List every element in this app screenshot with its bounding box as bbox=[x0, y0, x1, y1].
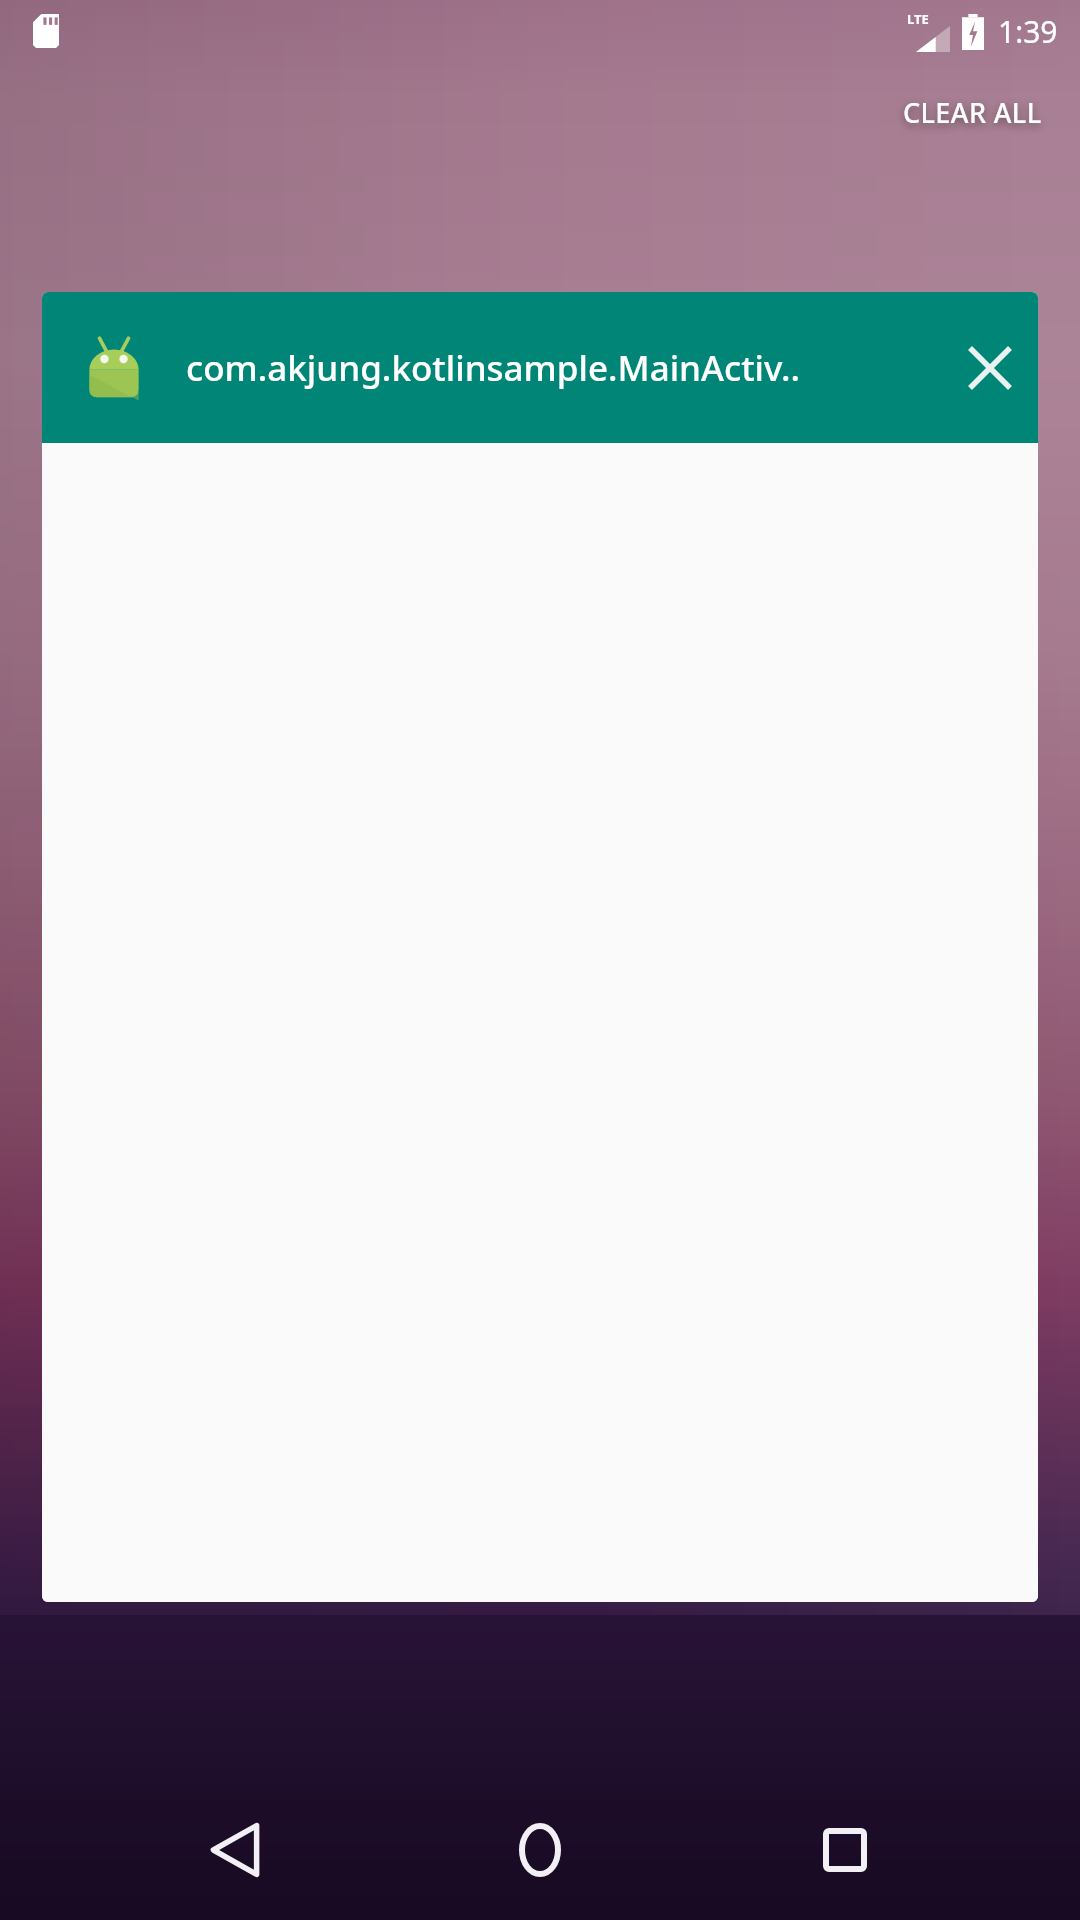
staticText: com.akjung.kotlinsample.MainActiv.. bbox=[186, 344, 942, 392]
staticText: 1:39 bbox=[998, 11, 1058, 52]
button[interactable]: Close task bbox=[942, 320, 1038, 416]
button[interactable]: Back bbox=[175, 1790, 295, 1910]
staticText: LTE bbox=[907, 10, 929, 28]
button[interactable]: com.akjung.kotlinsample.MainActiv.. bbox=[42, 292, 1038, 1602]
button[interactable]: Home bbox=[480, 1790, 600, 1910]
button[interactable]: Recent apps bbox=[785, 1790, 905, 1910]
button[interactable]: CLEAR ALL bbox=[893, 88, 1052, 137]
staticText: CLEAR ALL bbox=[903, 94, 1042, 131]
